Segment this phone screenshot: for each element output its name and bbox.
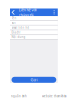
button[interactable]: Gửi xyxy=(11,77,56,83)
staticText: SĐT xyxy=(11,21,15,25)
staticText: Email liên hệ xyxy=(11,26,29,29)
button[interactable]: More options xyxy=(53,8,56,16)
staticText: Nội dung xyxy=(11,35,25,39)
staticText: Địa chỉ xyxy=(11,31,20,34)
button[interactable]: Back xyxy=(11,8,15,16)
staticText: website tham khảo xyxy=(42,94,67,98)
staticText: Gửi xyxy=(30,77,37,82)
staticText: nguồn ảnh xyxy=(11,94,27,98)
staticText: Tên xyxy=(11,16,16,20)
staticText: Liên hệ với chúng tôi xyxy=(18,7,36,18)
